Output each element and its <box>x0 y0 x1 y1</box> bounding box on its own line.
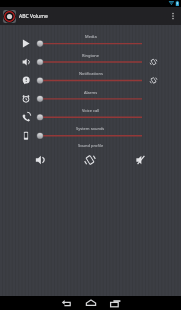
button[interactable]: System sounds <box>0 126 181 144</box>
button[interactable]: Ringtone <box>0 53 181 71</box>
button[interactable]: Media <box>0 34 181 52</box>
button[interactable]: Back <box>54 296 78 310</box>
staticText: Media <box>85 34 97 39</box>
button[interactable]: Home <box>78 296 103 310</box>
staticText: Notifications <box>79 71 103 76</box>
staticText: Voice call <box>82 108 100 113</box>
button[interactable]: Notifications <box>0 71 181 89</box>
button[interactable]: Alarms <box>0 90 181 108</box>
staticText: Ringtone <box>82 53 100 58</box>
staticText: ABC Volume <box>19 13 48 20</box>
button[interactable]: Recent apps <box>103 296 127 310</box>
button[interactable]: App icon <box>0 7 19 25</box>
button[interactable]: More options <box>164 7 181 25</box>
button[interactable]: Vibrate <box>78 150 104 170</box>
staticText: Alarms <box>84 90 98 95</box>
button[interactable]: Silent <box>129 150 155 170</box>
button[interactable]: Sound on <box>26 150 52 170</box>
staticText: System sounds <box>76 126 105 131</box>
staticText: Sound profile <box>78 143 104 148</box>
button[interactable]: Voice call <box>0 108 181 126</box>
